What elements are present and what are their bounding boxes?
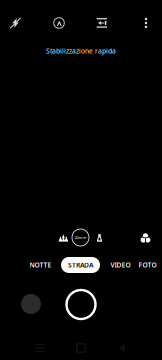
button[interactable]: Aspect ratio <box>87 10 117 36</box>
button[interactable]: FOTO <box>138 257 156 273</box>
button[interactable]: Take photo <box>62 285 100 323</box>
button[interactable]: Gallery <box>17 290 45 318</box>
staticText: Stabilizzazione rapida <box>46 47 116 55</box>
button[interactable]: Torch <box>91 229 107 247</box>
button[interactable]: Flash off <box>0 10 30 36</box>
button[interactable]: NOTTE <box>29 257 51 273</box>
button[interactable]: Scene detection <box>44 10 74 36</box>
button[interactable]: VIDEO <box>110 257 130 273</box>
staticText: STRADA <box>68 261 93 269</box>
staticText: 24mm <box>74 235 86 240</box>
staticText: FOTO <box>138 261 156 269</box>
button[interactable]: STRADA <box>61 257 100 273</box>
button[interactable]: Recents <box>23 338 57 358</box>
button[interactable]: Filters <box>135 228 155 248</box>
staticText: VIDEO <box>110 261 130 269</box>
staticText: NOTTE <box>29 261 51 269</box>
button[interactable]: Macro <box>54 229 72 247</box>
button[interactable]: Home <box>64 338 98 358</box>
button[interactable]: Lens 24 millimetres <box>70 227 90 247</box>
button[interactable]: More options <box>133 10 159 36</box>
